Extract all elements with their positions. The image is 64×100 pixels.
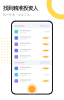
button[interactable] <box>12 28 52 35</box>
button[interactable]: Tab <box>12 94 22 100</box>
button[interactable] <box>12 47 52 54</box>
button[interactable] <box>12 35 52 41</box>
staticText: 用户管理 · 企业工具 <box>3 13 30 17</box>
staticText: 账单 <box>29 19 35 22</box>
staticText: 找到精准投资人 <box>3 5 38 12</box>
button[interactable] <box>12 54 52 60</box>
button[interactable]: Tab <box>22 94 32 100</box>
button[interactable]: Tab <box>32 94 42 100</box>
button[interactable] <box>12 65 52 71</box>
button[interactable]: Tab <box>42 94 52 100</box>
button[interactable] <box>12 78 52 84</box>
button[interactable] <box>12 41 52 47</box>
button[interactable] <box>12 71 52 78</box>
